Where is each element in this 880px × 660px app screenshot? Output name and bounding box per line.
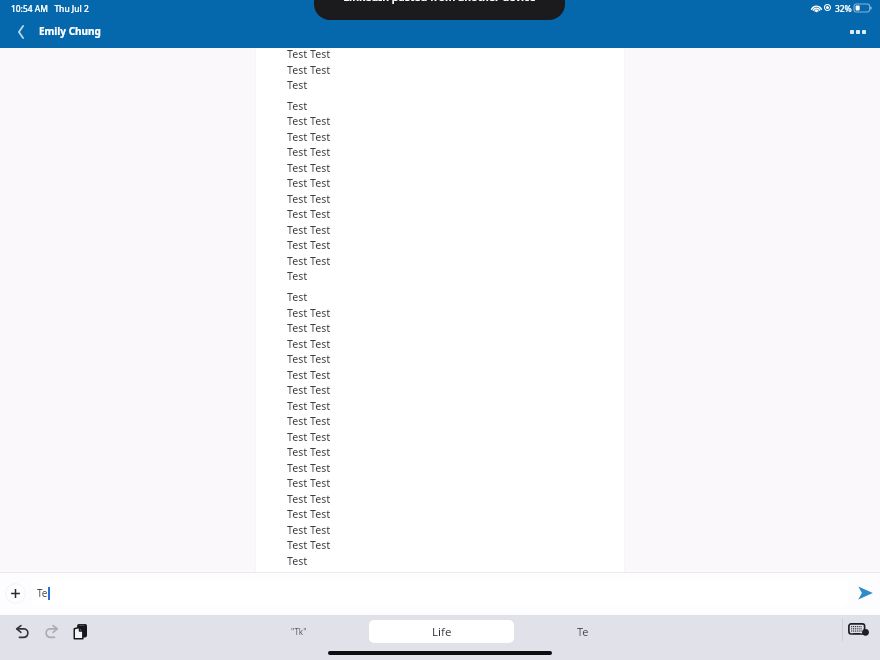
staticText: Test <box>287 290 308 304</box>
staticText: Test Test <box>287 399 331 413</box>
button[interactable]: More options <box>843 19 873 45</box>
staticText: Test Test <box>287 430 331 444</box>
button[interactable]: Te <box>512 620 653 643</box>
staticText: Test Test <box>287 383 331 397</box>
staticText: Test Test <box>287 414 331 428</box>
button[interactable]: Send <box>852 580 878 606</box>
staticText: 32% <box>835 3 852 14</box>
button[interactable]: Back <box>8 19 34 45</box>
button[interactable]: Redo <box>39 619 63 643</box>
staticText: Test Test <box>287 238 331 252</box>
button[interactable]: Life <box>369 620 514 643</box>
staticText: Test Test <box>287 254 331 268</box>
button[interactable]: Add attachment <box>5 583 26 604</box>
staticText: Test Test <box>287 63 331 77</box>
staticText: Test Test <box>287 161 331 175</box>
staticText: 10:54 AM Thu Jul 2 <box>11 3 89 14</box>
staticText: Te <box>37 586 48 600</box>
staticText: Test Test <box>287 492 331 506</box>
staticText: Emily Chung <box>39 24 101 38</box>
staticText: Test <box>287 99 308 113</box>
button[interactable]: Hide keyboard <box>846 621 870 639</box>
staticText: Test Test <box>287 207 331 221</box>
staticText: Test <box>287 554 308 568</box>
staticText: Test Test <box>287 352 331 366</box>
staticText: Test Test <box>287 114 331 128</box>
staticText: Test Test <box>287 176 331 190</box>
staticText: Test Test <box>287 306 331 320</box>
button[interactable]: Emily Chung <box>39 24 101 38</box>
button[interactable]: "Tk" <box>228 620 369 643</box>
button[interactable]: Undo <box>10 619 34 643</box>
staticText: "Tk" <box>291 626 307 637</box>
staticText: LinkedIn pasted from another device <box>343 0 536 5</box>
staticText: Test Test <box>287 507 331 521</box>
staticText: Test Test <box>287 523 331 537</box>
staticText: Te <box>577 624 589 639</box>
staticText: Test Test <box>287 538 331 552</box>
staticText: Life <box>432 624 452 640</box>
staticText: Test Test <box>287 223 331 237</box>
staticText: Test Test <box>287 476 331 490</box>
staticText: Test Test <box>287 337 331 351</box>
staticText: Test Test <box>287 145 331 159</box>
staticText: Test Test <box>287 368 331 382</box>
staticText: Test <box>287 78 308 92</box>
staticText: Test Test <box>287 130 331 144</box>
staticText: Test Test <box>287 192 331 206</box>
button[interactable]: Paste <box>68 619 92 643</box>
staticText: Test Test <box>287 445 331 459</box>
staticText: Test Test <box>287 47 331 61</box>
staticText: Test <box>287 269 308 283</box>
staticText: Test Test <box>287 321 331 335</box>
button[interactable]: Te <box>32 579 848 607</box>
staticText: Test Test <box>287 461 331 475</box>
